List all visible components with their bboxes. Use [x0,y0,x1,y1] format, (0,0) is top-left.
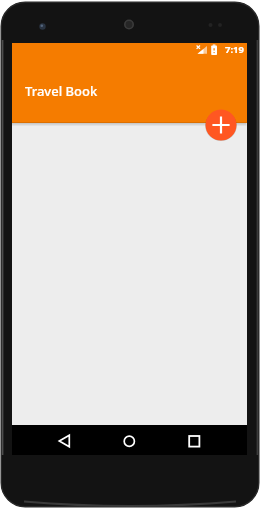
staticText: Travel Book [25,82,98,100]
staticText: 7:19 [225,43,244,56]
button[interactable] [205,109,237,141]
button[interactable] [50,426,80,454]
button[interactable] [114,426,144,454]
button[interactable] [179,426,209,454]
